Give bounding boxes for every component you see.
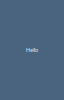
staticText: Hello — [26, 46, 38, 54]
